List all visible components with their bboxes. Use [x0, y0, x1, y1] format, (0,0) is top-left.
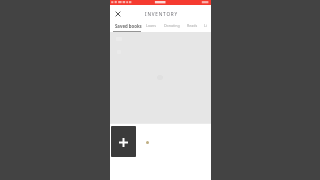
button[interactable]: Add item	[111, 126, 136, 157]
staticText: Li	[204, 23, 207, 28]
staticText: INVENTORY	[145, 11, 179, 17]
staticText: Reads	[187, 23, 198, 28]
staticText: Saved books	[115, 23, 142, 29]
button[interactable]: Saved books	[115, 21, 142, 32]
button[interactable]: Loans	[146, 21, 157, 32]
staticText: Donating	[164, 23, 180, 28]
button[interactable]: Reads	[187, 21, 198, 32]
button[interactable]: Close	[112, 8, 123, 19]
button[interactable]: Donating	[164, 21, 180, 32]
button[interactable]: Li	[204, 21, 207, 32]
staticText: Loans	[146, 23, 157, 28]
